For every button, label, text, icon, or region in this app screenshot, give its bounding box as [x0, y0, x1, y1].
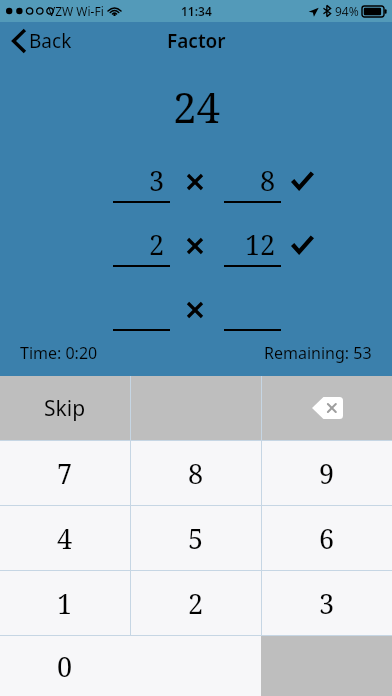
- staticText: 0: [57, 648, 73, 685]
- staticText: 7: [57, 455, 73, 492]
- staticText: 2: [149, 226, 165, 263]
- button[interactable]: 6: [262, 506, 392, 570]
- button[interactable]: 4: [0, 506, 130, 570]
- button[interactable]: 5: [131, 506, 261, 570]
- button[interactable]: 1: [0, 571, 130, 635]
- staticText: 94%: [335, 3, 359, 19]
- staticText: 12: [245, 226, 276, 263]
- staticText: 6: [319, 520, 335, 557]
- button[interactable]: 0: [0, 636, 130, 696]
- staticText: Back: [29, 28, 72, 54]
- staticText: 11:34: [181, 3, 212, 19]
- staticText: 4: [57, 520, 73, 557]
- staticText: 3: [149, 162, 165, 199]
- staticText: 8: [188, 455, 204, 492]
- staticText: 3: [319, 585, 335, 622]
- button[interactable]: Back: [8, 24, 76, 58]
- button[interactable]: Delete: [262, 376, 392, 440]
- button[interactable]: 9: [262, 441, 392, 505]
- staticText: 2: [188, 585, 204, 622]
- staticText: 9: [319, 455, 335, 492]
- staticText: Factor: [167, 28, 226, 54]
- button[interactable]: 7: [0, 441, 130, 505]
- staticText: VZW Wi-Fi: [48, 3, 104, 19]
- staticText: 5: [188, 520, 204, 557]
- button[interactable]: 8: [131, 441, 261, 505]
- staticText: Skip: [44, 394, 86, 423]
- button[interactable]: Skip: [0, 376, 130, 440]
- staticText: Remaining: 53: [264, 342, 372, 364]
- button[interactable]: 2: [131, 571, 261, 635]
- staticText: 8: [260, 162, 276, 199]
- staticText: Time: 0:20: [20, 342, 98, 364]
- staticText: 24: [173, 78, 220, 135]
- button[interactable]: 3: [262, 571, 392, 635]
- staticText: 1: [57, 585, 73, 622]
